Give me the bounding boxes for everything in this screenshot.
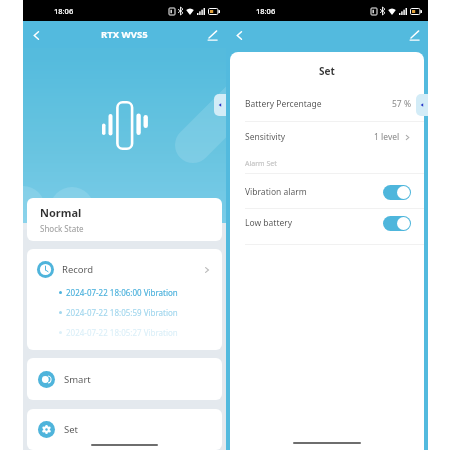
staticText: Low battery [245,217,293,229]
button[interactable] [383,216,411,231]
staticText: 57 % [392,98,411,110]
staticText: RTX WVS5 [101,28,148,41]
button[interactable]: Edit [202,25,222,45]
staticText: 2024-07-22 18:06:00 Vibration [66,287,178,298]
staticText: 18:06 [54,6,74,16]
button[interactable] [383,185,411,200]
button[interactable]: Edit [404,25,424,45]
button[interactable]: Back [229,25,249,45]
button[interactable]: Set [27,409,222,450]
staticText: Record [62,263,94,276]
staticText: 2024-07-22 18:05:27 Vibration [66,327,178,338]
staticText: 18:06 [256,6,276,16]
staticText: Sensitivity [245,131,286,143]
staticText: Vibration alarm [245,186,307,198]
button[interactable]: Expand panel [214,94,226,116]
button[interactable]: Expand panel [416,94,428,116]
staticText: Battery Percentage [245,98,322,110]
button[interactable]: Battery Percentage [230,87,424,120]
staticText: Shock State [40,223,84,234]
button[interactable]: Smart [27,358,222,400]
button[interactable]: Back [26,25,46,45]
staticText: 2024-07-22 18:05:59 Vibration [66,307,178,318]
button[interactable]: Record [27,249,222,290]
staticText: 1 level [374,131,400,143]
button[interactable]: Sensitivity [230,120,424,154]
staticText: Alarm Set [245,159,277,169]
staticText: Smart [64,373,91,386]
button[interactable]: Low battery [230,211,424,235]
staticText: Set [64,423,79,436]
staticText: Normal [40,205,82,220]
button[interactable]: Vibration alarm [230,173,424,211]
staticText: Set [319,64,335,78]
